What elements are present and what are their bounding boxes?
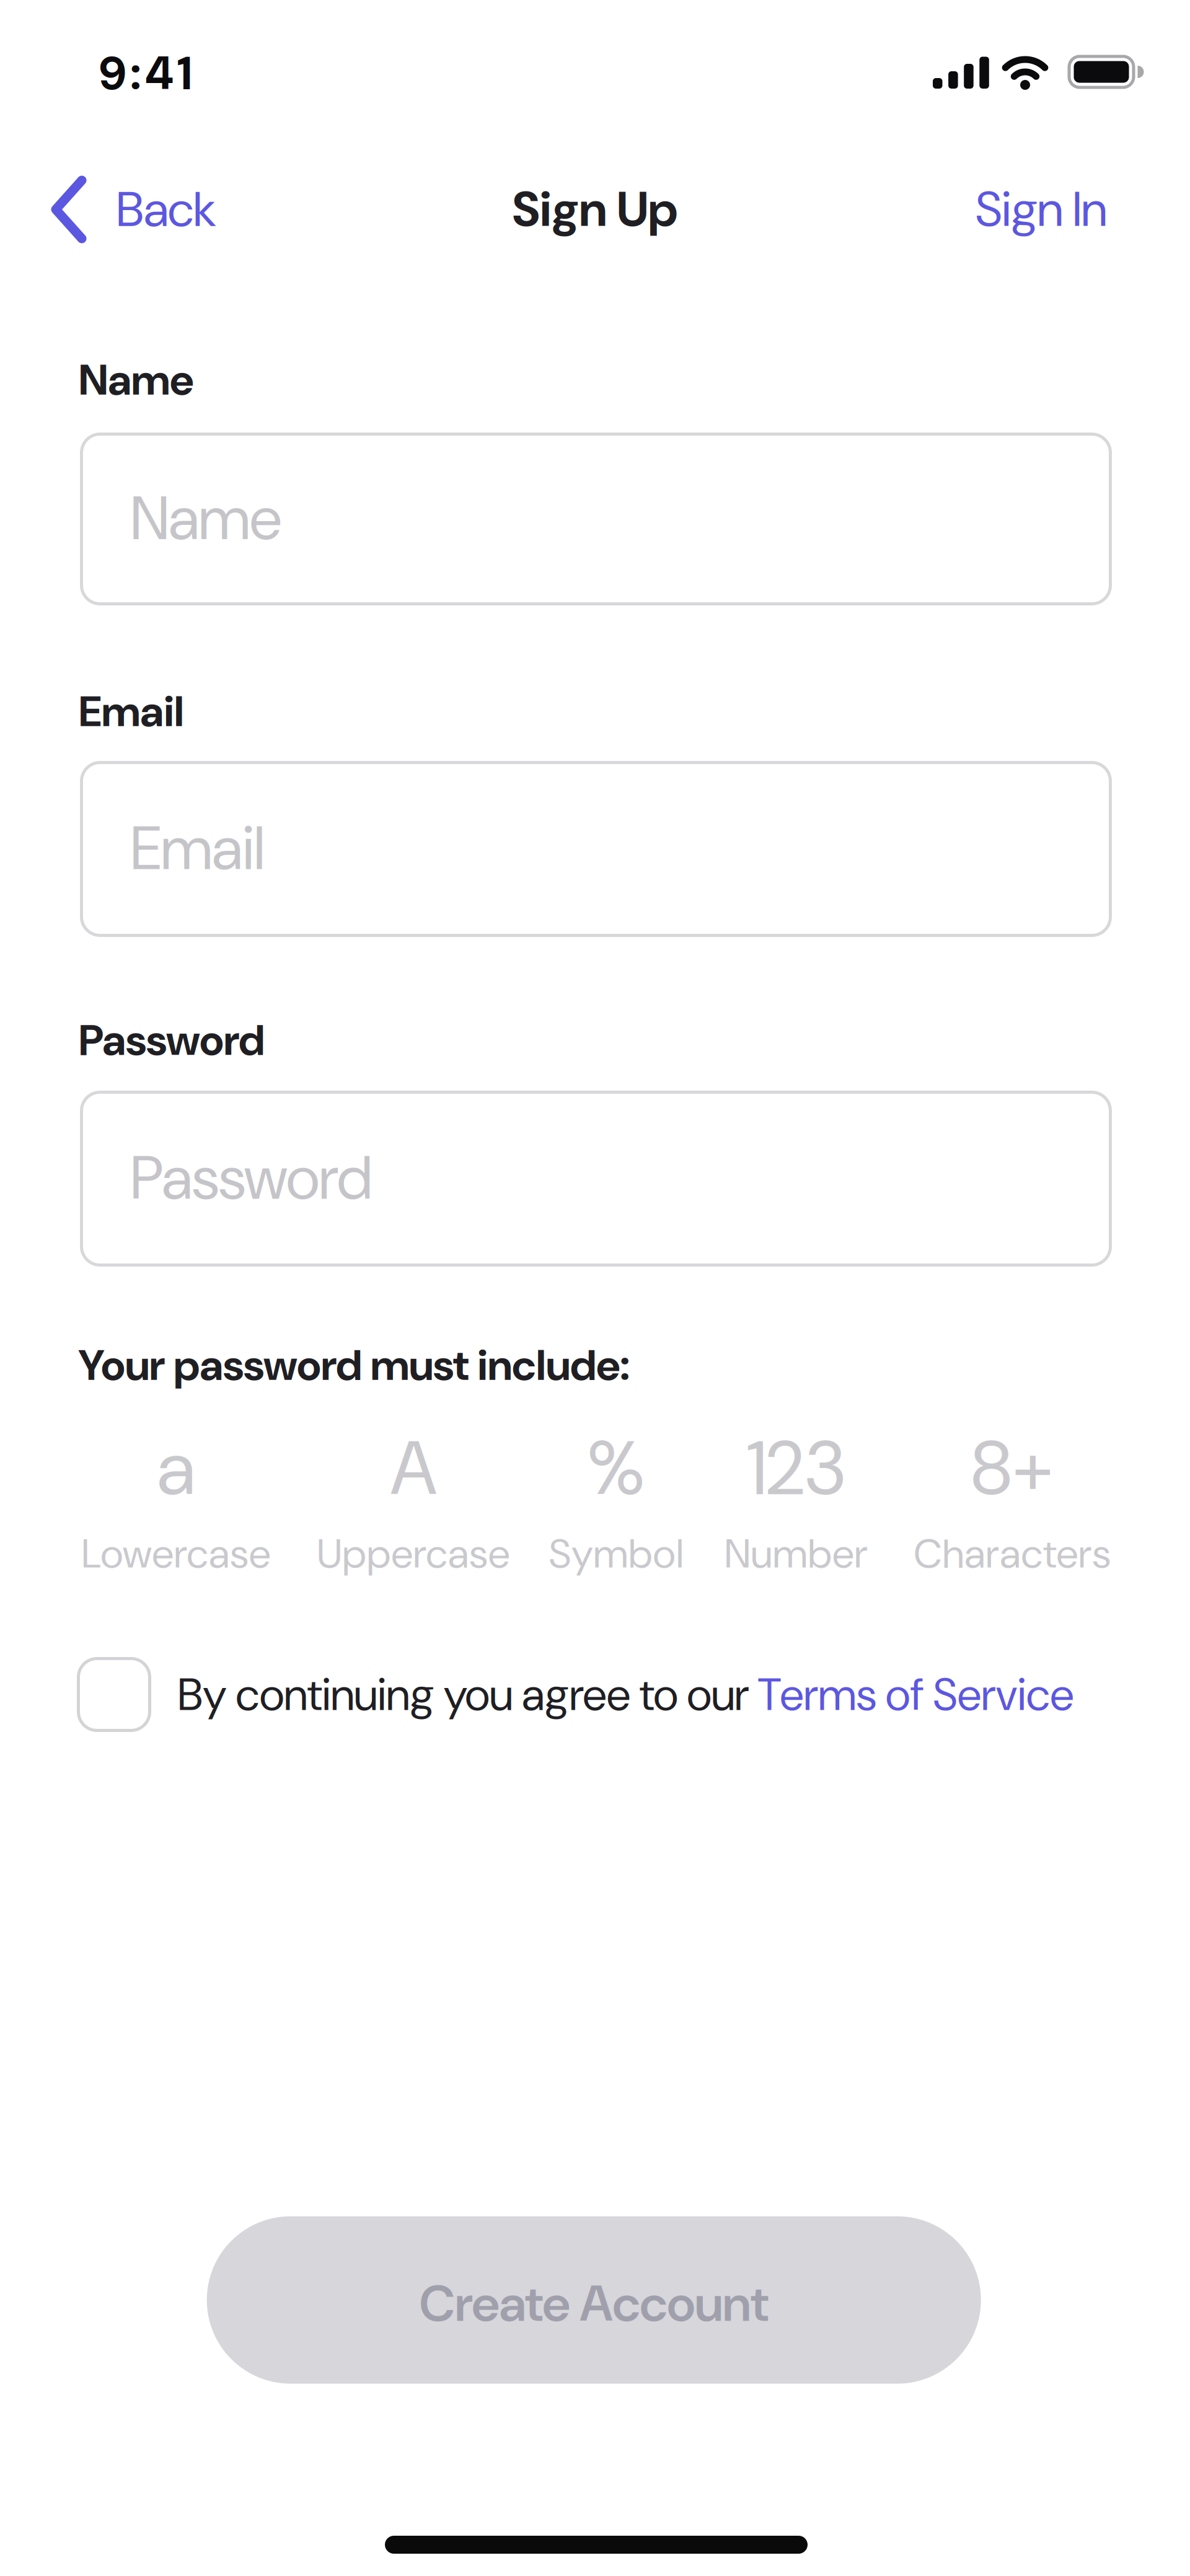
staticText: Sign Up [512, 178, 678, 241]
staticText: Terms of Service [758, 1666, 1074, 1724]
staticText: Back [117, 178, 216, 241]
button[interactable]: Agree to Terms of Service [77, 1657, 151, 1732]
staticText: Number [725, 1527, 868, 1580]
staticText: 9:41 [99, 43, 192, 104]
staticText: By continuing you agree to our [178, 1666, 758, 1724]
button[interactable]: Terms of Service [758, 1666, 1074, 1724]
staticText: Password [131, 1139, 372, 1217]
staticText: Characters [914, 1527, 1110, 1580]
button[interactable]: Back [50, 175, 216, 244]
staticText: Sign In [976, 178, 1107, 241]
button[interactable]: Create Account [207, 2216, 981, 2384]
staticText: Your password must include: [78, 1337, 630, 1393]
staticText: Lowercase [82, 1527, 270, 1580]
staticText: Email [79, 684, 184, 739]
staticText: Password [79, 1012, 265, 1068]
staticText: Uppercase [317, 1527, 509, 1580]
staticText: 123 [747, 1420, 845, 1517]
staticText: Email [131, 809, 265, 888]
staticText: Symbol [549, 1527, 683, 1580]
staticText: a [157, 1420, 195, 1517]
staticText: 8+ [971, 1420, 1054, 1517]
staticText: Name [131, 479, 281, 558]
staticText: Create Account [419, 2271, 769, 2337]
button[interactable]: Sign In [976, 178, 1107, 241]
staticText: A [390, 1420, 436, 1517]
staticText: % [587, 1420, 645, 1517]
staticText: Name [79, 352, 193, 408]
